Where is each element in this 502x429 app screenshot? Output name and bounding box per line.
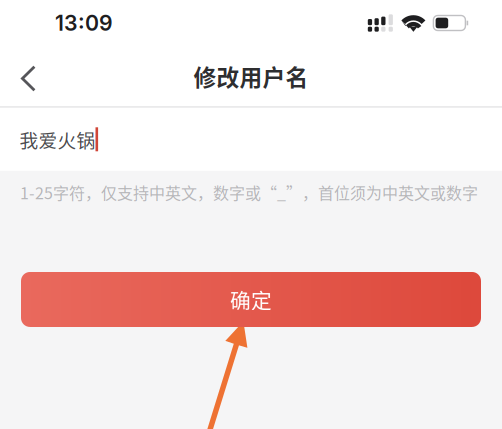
staticText: 我爱火锅 — [19, 126, 95, 153]
staticText: 修改用户名 — [193, 60, 308, 92]
staticText: 确定 — [230, 284, 272, 314]
staticText: 13:09 — [55, 10, 113, 36]
button[interactable]: 确定 — [21, 272, 481, 327]
staticText: 1-25字符，仅支持中英文，数字或“_”，首位须为中英文或数字 — [20, 181, 478, 204]
button[interactable]: Back — [0, 49, 52, 103]
